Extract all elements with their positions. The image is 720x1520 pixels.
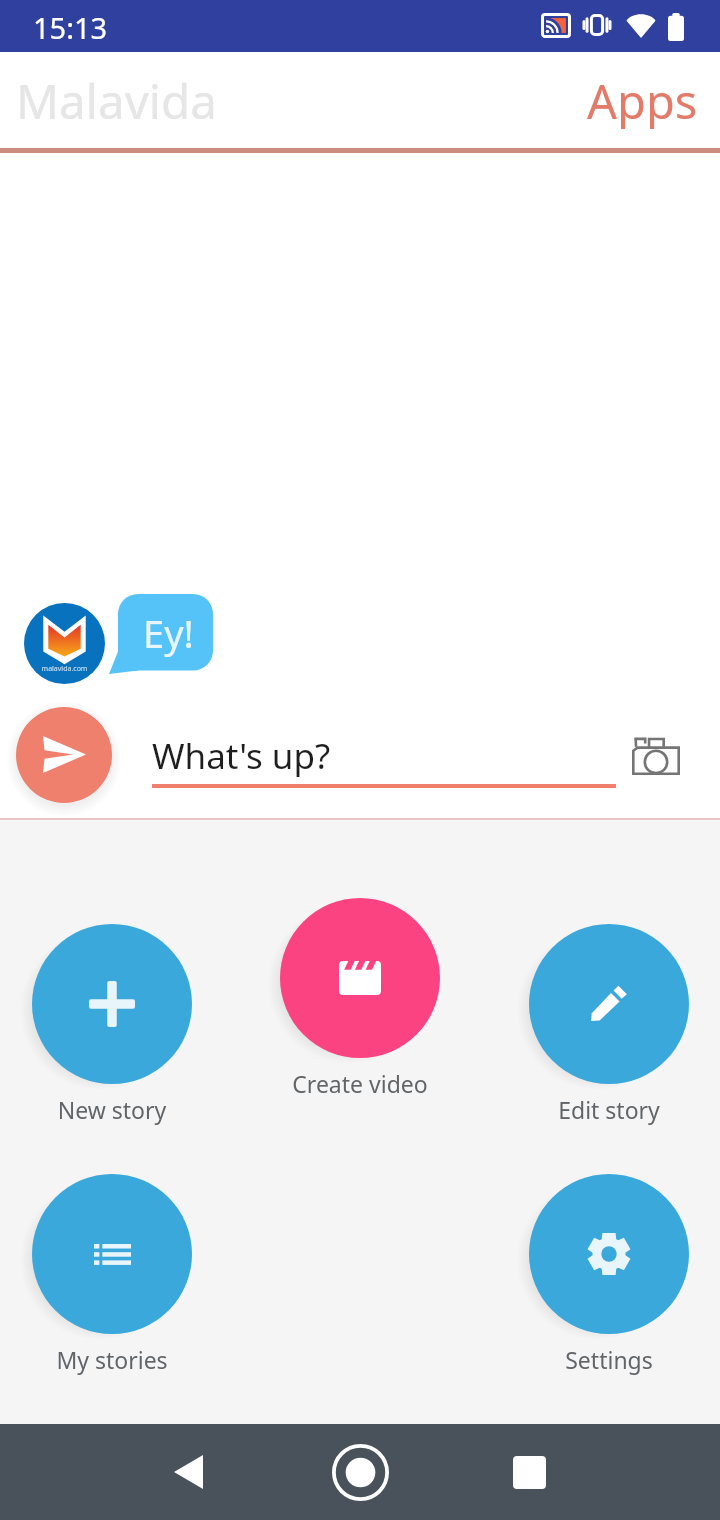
staticText: malavida.com	[24, 664, 105, 674]
staticText: What's up?	[152, 732, 331, 780]
staticText: Ey!	[143, 607, 194, 659]
button[interactable]: Home	[311, 1424, 409, 1520]
staticText: 15:13	[33, 8, 108, 47]
button[interactable]: Camera	[622, 727, 690, 785]
button[interactable]: Recents	[481, 1424, 579, 1520]
staticText: Settings	[529, 1344, 689, 1375]
button[interactable]: New story	[32, 924, 192, 1126]
button[interactable]: Apps	[582, 66, 697, 126]
staticText: Malavida	[16, 68, 217, 133]
staticText: Create video	[280, 1068, 440, 1099]
button[interactable]: Edit story	[529, 924, 689, 1126]
button[interactable]: Settings	[529, 1174, 689, 1376]
button[interactable]: Send	[16, 707, 112, 803]
button[interactable]: Create video	[280, 898, 440, 1100]
button[interactable]: My stories	[32, 1174, 192, 1376]
staticText: New story	[32, 1094, 192, 1125]
staticText: My stories	[32, 1344, 192, 1375]
staticText: Edit story	[529, 1094, 689, 1125]
button[interactable]: Back	[140, 1424, 238, 1520]
staticText: Apps	[587, 69, 698, 129]
